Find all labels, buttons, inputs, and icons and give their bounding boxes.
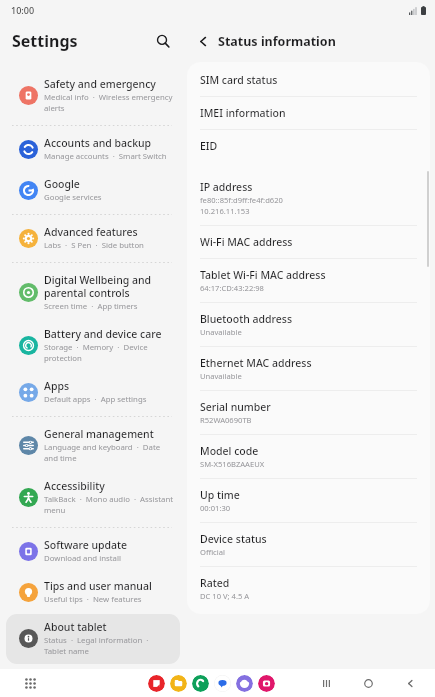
- button[interactable]: Rated: [187, 567, 430, 610]
- button[interactable]: Software update: [6, 532, 180, 571]
- staticText: Battery and device care: [44, 327, 162, 341]
- staticText: TalkBack · Mono audio · Assistant menu: [44, 494, 174, 516]
- staticText: Bluetooth address: [200, 312, 292, 326]
- button[interactable]: Digital Wellbeing and parental controls: [6, 267, 180, 319]
- button[interactable]: Home: [359, 674, 377, 692]
- staticText: Tablet Wi-Fi MAC address: [200, 268, 326, 282]
- staticText: Up time: [200, 488, 240, 502]
- staticText: Accessibility: [44, 479, 105, 493]
- staticText: Useful tips · New features: [44, 594, 142, 605]
- staticText: Software update: [44, 538, 128, 552]
- button[interactable]: Tablet Wi-Fi MAC address: [187, 259, 430, 302]
- staticText: General management: [44, 427, 154, 441]
- button[interactable]: Battery and device care: [6, 321, 180, 371]
- staticText: Accounts and backup: [44, 136, 152, 150]
- button[interactable]: Device status: [187, 523, 430, 566]
- staticText: Google: [44, 177, 80, 191]
- staticText: Status · Legal information · Tablet name: [44, 635, 174, 657]
- staticText: Language and keyboard · Date and time: [44, 442, 174, 464]
- button[interactable]: Search: [150, 28, 176, 54]
- staticText: Manage accounts · Smart Switch: [44, 151, 167, 162]
- staticText: 10:00: [11, 4, 35, 16]
- button[interactable]: Advanced features: [6, 219, 180, 258]
- button[interactable]: SIM card status: [187, 64, 430, 96]
- staticText: EID: [200, 139, 218, 153]
- staticText: SM-X516BZAAEUX: [200, 459, 265, 469]
- staticText: Model code: [200, 444, 259, 458]
- button[interactable]: App 4: [236, 675, 253, 692]
- staticText: Screen time · App timers: [44, 301, 138, 312]
- button[interactable]: Back: [401, 674, 419, 692]
- button[interactable]: App 3: [214, 675, 231, 692]
- button[interactable]: Up time: [187, 479, 430, 522]
- staticText: SIM card status: [200, 73, 278, 87]
- staticText: Tips and user manual: [44, 579, 152, 593]
- button[interactable]: App 2: [192, 675, 209, 692]
- staticText: Default apps · App settings: [44, 394, 147, 405]
- staticText: Rated: [200, 576, 230, 590]
- staticText: 10.216.11.153: [200, 206, 250, 216]
- staticText: IP address: [200, 180, 253, 194]
- button[interactable]: Back: [190, 28, 216, 54]
- button[interactable]: App 5: [258, 675, 275, 692]
- button[interactable]: EID: [187, 130, 430, 162]
- button[interactable]: Apps: [20, 673, 40, 693]
- button[interactable]: Accounts and backup: [6, 130, 180, 169]
- staticText: Apps: [44, 379, 70, 393]
- staticText: Device status: [200, 532, 267, 546]
- staticText: Digital Wellbeing and parental controls: [44, 273, 174, 300]
- staticText: Google services: [44, 192, 102, 203]
- staticText: Safety and emergency: [44, 77, 156, 91]
- staticText: Download and install: [44, 553, 121, 564]
- staticText: fe80::85f:d9ff:fe4f:d620: [200, 195, 283, 205]
- button[interactable]: Bluetooth address: [187, 303, 430, 346]
- button[interactable]: IP address: [187, 171, 430, 225]
- staticText: DC 10 V; 4.5 A: [200, 591, 250, 601]
- button[interactable]: About tablet: [6, 614, 180, 664]
- staticText: Settings: [12, 30, 78, 52]
- button[interactable]: Google: [6, 171, 180, 210]
- button[interactable]: IMEI information: [187, 97, 430, 129]
- staticText: Medical info · Wireless emergency alerts: [44, 92, 174, 114]
- staticText: Labs · S Pen · Side button: [44, 240, 144, 251]
- staticText: About tablet: [44, 620, 107, 634]
- button[interactable]: Safety and emergency: [6, 71, 180, 121]
- staticText: Wi-Fi MAC address: [200, 235, 293, 249]
- staticText: Serial number: [200, 400, 271, 414]
- staticText: Official: [200, 547, 225, 557]
- button[interactable]: Serial number: [187, 391, 430, 434]
- button[interactable]: Model code: [187, 435, 430, 478]
- staticText: Ethernet MAC address: [200, 356, 312, 370]
- staticText: Status information: [218, 33, 336, 50]
- button[interactable]: General management: [6, 421, 180, 471]
- staticText: Unavailable: [200, 371, 242, 381]
- staticText: R52WA0690TB: [200, 415, 252, 425]
- button[interactable]: Wi-Fi MAC address: [187, 226, 430, 258]
- button[interactable]: Ethernet MAC address: [187, 347, 430, 390]
- staticText: Advanced features: [44, 225, 138, 239]
- button[interactable]: Recents: [317, 674, 335, 692]
- button[interactable]: App 0: [148, 675, 165, 692]
- staticText: 64:17:CD:43:22:98: [200, 283, 264, 293]
- button[interactable]: App 1: [170, 675, 187, 692]
- button[interactable]: Accessibility: [6, 473, 180, 523]
- button[interactable]: Tips and user manual: [6, 573, 180, 612]
- staticText: 00:01:30: [200, 503, 231, 513]
- button[interactable]: Apps: [6, 373, 180, 412]
- staticText: Storage · Memory · Device protection: [44, 342, 174, 364]
- staticText: IMEI information: [200, 106, 286, 120]
- staticText: Unavailable: [200, 327, 242, 337]
